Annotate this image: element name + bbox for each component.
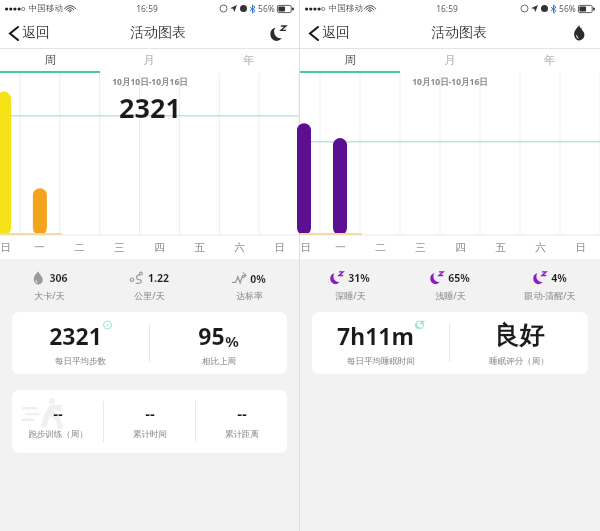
staticText: 月	[143, 53, 155, 67]
staticText: 二	[375, 241, 386, 254]
button[interactable]: 返回	[8, 21, 52, 45]
staticText: 一	[335, 241, 346, 254]
staticText: 四	[455, 241, 466, 254]
staticText: 年	[243, 53, 255, 67]
staticText: %	[225, 331, 239, 351]
staticText: 大卡/天	[34, 289, 65, 301]
button[interactable]: 月	[99, 49, 199, 71]
staticText: 良好	[494, 320, 544, 351]
button[interactable]: 年	[199, 49, 299, 71]
button[interactable]: 31%	[300, 265, 400, 307]
staticText: 0%	[250, 272, 266, 286]
staticText: 日	[274, 241, 285, 254]
staticText: 五	[194, 241, 205, 254]
staticText: 周	[44, 53, 56, 67]
staticText: 65%	[448, 271, 470, 285]
staticText: --	[237, 403, 247, 423]
staticText: 中国移动	[329, 3, 363, 14]
staticText: 返回	[22, 24, 50, 42]
button[interactable]: 65%	[400, 265, 500, 307]
staticText: 三	[415, 241, 426, 254]
staticText: 活动图表	[130, 24, 186, 42]
staticText: 2321	[49, 320, 102, 351]
staticText: 2321	[119, 89, 181, 126]
staticText: 五	[495, 241, 506, 254]
button[interactable]: 0%	[199, 265, 299, 307]
staticText: 每日平均步数	[55, 356, 106, 367]
staticText: 10月10日-10月16日	[112, 76, 188, 88]
staticText: 六	[535, 241, 546, 254]
staticText: 六	[234, 241, 245, 254]
staticText: 浅睡/天	[435, 289, 466, 301]
button[interactable]: --	[12, 390, 287, 453]
staticText: 活动图表	[431, 24, 487, 42]
staticText: 56%	[258, 3, 275, 15]
staticText: 1.22	[148, 271, 169, 285]
staticText: 31%	[348, 271, 370, 285]
button[interactable]: 4%	[500, 265, 600, 307]
staticText: 16:59	[136, 3, 158, 15]
button[interactable]: 7h11m	[312, 312, 588, 374]
staticText: 日	[300, 241, 311, 254]
staticText: 56%	[559, 3, 576, 15]
button[interactable]: Sleep mode	[566, 20, 592, 46]
staticText: 95	[198, 320, 225, 351]
button[interactable]: 年	[500, 49, 600, 71]
staticText: 达标率	[236, 290, 263, 301]
button[interactable]: 2321	[12, 312, 287, 374]
button[interactable]: Activity mode	[265, 20, 291, 46]
staticText: 10月10日-10月16日	[412, 76, 488, 88]
staticText: --	[145, 403, 155, 423]
button[interactable]: 306	[0, 265, 99, 307]
staticText: 周	[344, 53, 356, 67]
staticText: 日	[0, 241, 11, 254]
staticText: 相比上周	[202, 356, 236, 367]
staticText: 累计距离	[225, 429, 259, 440]
staticText: 公里/天	[134, 289, 165, 301]
staticText: 返回	[322, 24, 350, 42]
button[interactable]: 周	[300, 49, 400, 71]
button[interactable]: 1.22	[99, 265, 199, 307]
button[interactable]: 月	[400, 49, 500, 71]
button[interactable]: 周	[0, 49, 99, 71]
staticText: 一	[34, 241, 45, 254]
staticText: 年	[544, 53, 556, 67]
staticText: 7h11m	[337, 320, 414, 351]
staticText: 月	[444, 53, 456, 67]
staticText: 跑步训练（周）	[28, 429, 88, 440]
staticText: --	[53, 403, 63, 423]
staticText: 二	[74, 241, 85, 254]
staticText: 每日平均睡眠时间	[347, 356, 415, 367]
staticText: 四	[154, 241, 165, 254]
staticText: 睡眠评分（周）	[489, 356, 549, 367]
staticText: 累计时间	[133, 429, 167, 440]
staticText: 16:59	[436, 3, 458, 15]
staticText: 三	[114, 241, 125, 254]
staticText: 306	[49, 271, 68, 285]
staticText: 中国移动	[29, 3, 63, 14]
button[interactable]: 返回	[308, 21, 352, 45]
staticText: 深睡/天	[335, 289, 366, 301]
staticText: 日	[575, 241, 586, 254]
staticText: 4%	[551, 271, 567, 285]
staticText: 眼动-清醒/天	[524, 289, 576, 301]
